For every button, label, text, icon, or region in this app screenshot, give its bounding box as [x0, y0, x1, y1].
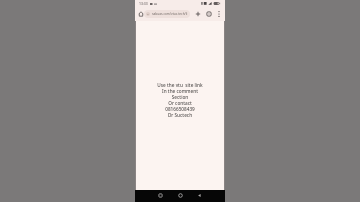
staticText: T1 — [147, 13, 150, 16]
staticText: sabuas.com/vtuc.tech/li — [152, 12, 188, 16]
button[interactable] — [195, 11, 201, 17]
staticText: 13:33 — [139, 1, 148, 6]
staticText: Use the vtu site link In the comment Sec… — [135, 82, 225, 118]
button[interactable] — [197, 193, 202, 198]
button[interactable] — [206, 11, 212, 17]
button[interactable]: T1 — [144, 10, 190, 18]
button[interactable] — [138, 11, 144, 17]
button[interactable] — [178, 193, 183, 198]
button[interactable] — [158, 193, 163, 198]
button[interactable] — [217, 10, 221, 18]
